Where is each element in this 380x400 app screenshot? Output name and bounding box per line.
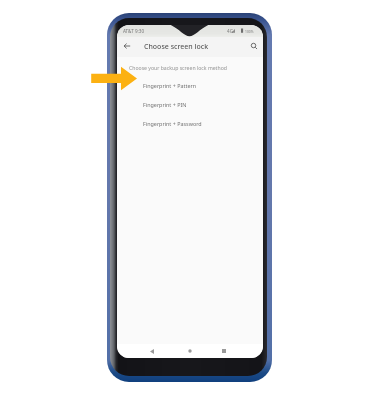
button[interactable]: Fingerprint + Password [117,114,263,133]
button[interactable]: Fingerprint + PIN [117,95,263,114]
button[interactable]: Fingerprint + Pattern [117,76,263,95]
button[interactable]: Search [247,39,261,53]
staticText: Choose your backup screen lock method [129,64,227,71]
staticText: Fingerprint + PIN [143,101,187,108]
staticText: AT&T 9:30 [123,28,145,34]
staticText: 4G [227,28,233,34]
button[interactable]: Recent apps [217,344,231,358]
button[interactable]: Back [145,344,159,358]
staticText: Choose screen lock [144,42,209,52]
button[interactable]: Home [183,344,197,358]
staticText: Fingerprint + Pattern [143,82,196,89]
button[interactable]: Back [120,39,134,53]
staticText: Fingerprint + Password [143,120,202,127]
staticText: 100% [245,29,254,33]
